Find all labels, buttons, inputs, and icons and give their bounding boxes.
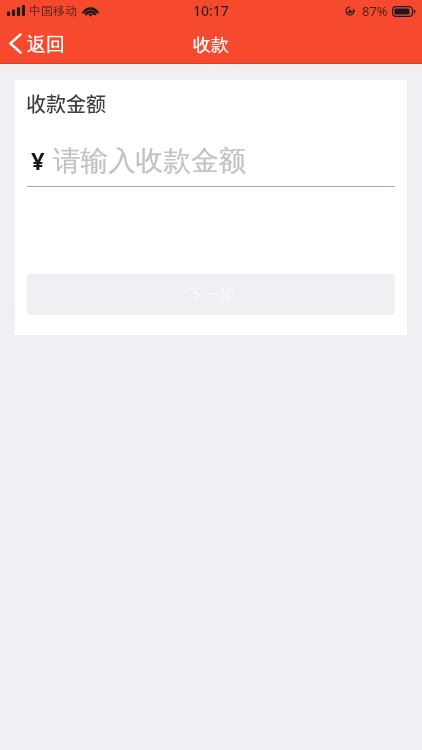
staticText: ¥	[31, 144, 45, 177]
staticText: 请输入收款金额	[53, 143, 247, 178]
staticText: 收款	[193, 34, 229, 57]
staticText: 中国移动	[29, 3, 77, 18]
staticText: 返回	[27, 33, 65, 57]
staticText: 10:17	[193, 1, 229, 20]
other: Back	[9, 33, 22, 54]
button[interactable]: ¥	[27, 140, 395, 181]
staticText: 87%	[362, 2, 388, 20]
staticText: 收款金额	[26, 89, 106, 118]
button[interactable]: Back	[6, 26, 73, 64]
